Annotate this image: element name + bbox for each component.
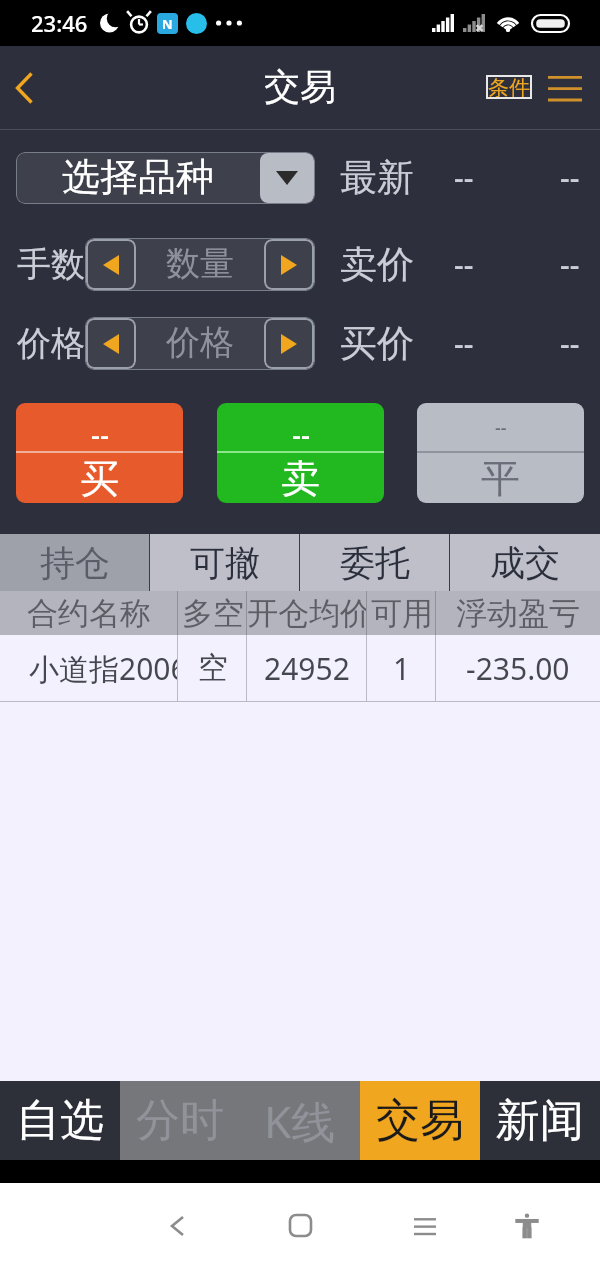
button[interactable]: Menu [547, 68, 583, 108]
button[interactable]: 持仓 [0, 534, 150, 591]
button[interactable]: -- [217, 403, 384, 503]
staticText: -- [560, 157, 580, 198]
staticText: 小道指2006 [29, 648, 178, 689]
staticText: 可用 [371, 594, 433, 633]
button[interactable]: 小道指2006 [0, 635, 600, 701]
staticText: 成交 [490, 541, 560, 585]
button[interactable]: 分时 [120, 1081, 240, 1160]
staticText: -- [454, 244, 474, 285]
staticText: -- [454, 157, 474, 198]
staticText: 价格 [166, 321, 234, 364]
staticText: -- [560, 323, 580, 364]
button[interactable]: Decrease [86, 318, 136, 369]
staticText: 委托 [340, 541, 410, 585]
staticText: 可撤 [190, 541, 260, 585]
staticText: 平 [481, 454, 520, 503]
staticText: 自选 [16, 1093, 104, 1148]
button[interactable]: Decrease [86, 239, 136, 290]
staticText: 分时 [136, 1093, 224, 1148]
button[interactable]: 成交 [450, 534, 600, 591]
button[interactable]: Home [274, 1199, 327, 1252]
button[interactable]: -- [417, 403, 584, 503]
staticText: 选择品种 [62, 153, 214, 201]
staticText: N [162, 15, 173, 33]
staticText: -235.00 [466, 648, 570, 689]
staticText: 空 [198, 649, 228, 687]
staticText: -- [495, 415, 507, 440]
staticText: 买价 [340, 320, 414, 367]
button[interactable]: Back [151, 1199, 204, 1252]
staticText: 条件 [488, 75, 530, 99]
staticText: 多空 [182, 594, 244, 633]
staticText: 价格 [17, 322, 85, 365]
staticText: -- [292, 415, 310, 453]
button[interactable]: Accessibility [500, 1199, 553, 1252]
staticText: 23:46 [31, 8, 88, 38]
staticText: -- [454, 323, 474, 364]
staticText: 开仓均价 [247, 594, 367, 633]
staticText: -- [91, 415, 109, 453]
staticText: 合约名称 [27, 594, 151, 633]
button[interactable]: Increase [264, 318, 314, 369]
staticText: 最新 [340, 154, 414, 201]
button[interactable]: Increase [264, 239, 314, 290]
staticText: 数量 [166, 242, 234, 285]
staticText: 持仓 [40, 541, 110, 585]
button[interactable]: -- [16, 403, 183, 503]
staticText: K线 [264, 1091, 336, 1151]
staticText: 手数 [17, 243, 85, 286]
staticText: 买 [80, 454, 119, 503]
staticText: 24952 [264, 648, 350, 689]
staticText: 卖 [281, 454, 320, 503]
button[interactable]: 新闻 [480, 1081, 600, 1160]
staticText: 新闻 [496, 1093, 584, 1148]
button[interactable]: 选择品种 [16, 152, 315, 204]
button[interactable]: 交易 [360, 1081, 480, 1160]
button[interactable]: 可撤 [150, 534, 300, 591]
staticText: -- [560, 244, 580, 285]
button[interactable]: 自选 [0, 1081, 120, 1160]
staticText: 1 [393, 648, 411, 689]
button[interactable]: 委托 [300, 534, 450, 591]
staticText: 卖价 [340, 241, 414, 288]
staticText: 交易 [376, 1093, 464, 1148]
staticText: 浮动盈亏 [456, 594, 580, 633]
button[interactable]: Recents [398, 1199, 451, 1252]
button[interactable]: K线 [240, 1081, 360, 1160]
button[interactable]: Back [0, 46, 54, 130]
staticText: 交易 [264, 64, 336, 109]
button[interactable]: 条件 [486, 75, 532, 99]
